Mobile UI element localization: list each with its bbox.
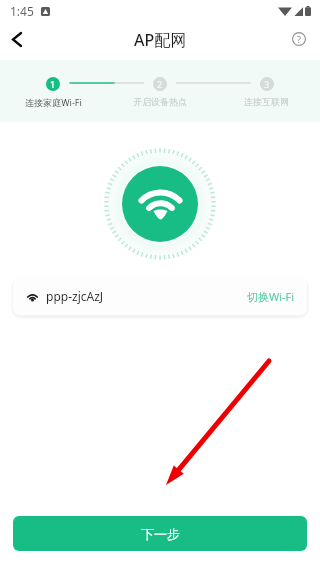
button[interactable]: 切换Wi-Fi — [247, 289, 295, 304]
staticText: ppp-zjcAzJ — [46, 288, 104, 304]
button[interactable]: Back — [0, 22, 40, 60]
button[interactable]: 1 — [0, 77, 106, 108]
button[interactable]: ppp-zjcAzJ — [13, 277, 307, 315]
staticText: 1 — [50, 78, 56, 90]
staticText: 连接互联网 — [244, 96, 289, 107]
staticText: 3 — [264, 78, 270, 90]
staticText: 开启设备热点 — [133, 96, 187, 107]
button[interactable]: Help — [280, 22, 320, 60]
button[interactable]: 3 — [213, 77, 320, 107]
staticText: 连接家庭Wi-Fi — [25, 96, 82, 108]
staticText: AP配网 — [134, 29, 187, 51]
staticText: 切换Wi-Fi — [247, 289, 295, 304]
button[interactable]: 下一步 — [13, 516, 307, 551]
staticText: ? — [297, 33, 301, 45]
staticText: 下一步 — [141, 526, 180, 542]
staticText: 1:45 — [10, 3, 34, 19]
button[interactable]: 2 — [106, 77, 213, 107]
staticText: 2 — [157, 78, 163, 90]
